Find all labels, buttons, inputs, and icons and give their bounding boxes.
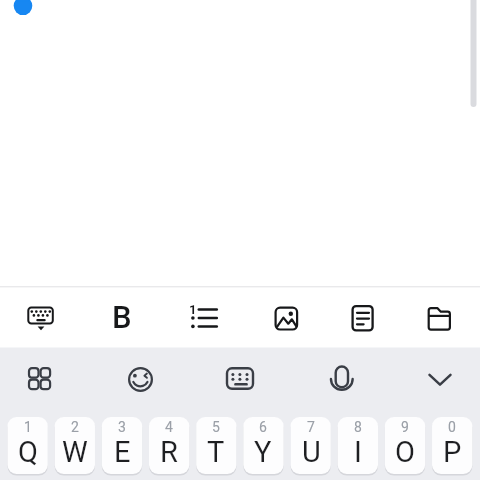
staticText: Q: [18, 435, 38, 469]
button[interactable]: 4: [149, 417, 189, 474]
button[interactable]: 2: [55, 417, 95, 474]
button[interactable]: [320, 288, 400, 347]
button[interactable]: [314, 351, 370, 407]
button[interactable]: 9: [385, 417, 425, 474]
staticText: 5: [212, 419, 220, 435]
button[interactable]: [0, 288, 80, 347]
button[interactable]: [240, 288, 320, 347]
staticText: 1: [189, 302, 197, 317]
button[interactable]: [112, 351, 168, 407]
button[interactable]: [160, 288, 240, 347]
button[interactable]: 6: [243, 417, 283, 474]
button[interactable]: [400, 288, 480, 347]
button[interactable]: [12, 351, 68, 407]
staticText: 3: [118, 419, 126, 435]
staticText: U: [302, 435, 321, 469]
staticText: I: [354, 435, 362, 469]
staticText: E: [114, 435, 131, 469]
button[interactable]: 3: [102, 417, 142, 474]
staticText: 0: [448, 419, 456, 435]
staticText: 9: [401, 419, 409, 435]
staticText: P: [443, 435, 462, 469]
staticText: 8: [354, 419, 362, 435]
staticText: B: [112, 299, 132, 335]
staticText: 7: [307, 419, 315, 435]
staticText: 4: [165, 419, 173, 435]
staticText: 1: [24, 419, 32, 435]
button[interactable]: 0: [432, 417, 472, 474]
button[interactable]: [412, 351, 468, 407]
staticText: W: [62, 435, 88, 469]
button[interactable]: 7: [291, 417, 331, 474]
staticText: 6: [259, 419, 267, 435]
staticText: Y: [254, 435, 272, 469]
button[interactable]: [212, 351, 268, 407]
staticText: R: [160, 435, 178, 469]
staticText: 2: [71, 419, 79, 435]
staticText: O: [395, 435, 415, 469]
button[interactable]: [80, 288, 160, 347]
button[interactable]: 5: [196, 417, 236, 474]
button[interactable]: 8: [338, 417, 378, 474]
staticText: T: [207, 435, 225, 469]
button[interactable]: 1: [8, 417, 48, 474]
